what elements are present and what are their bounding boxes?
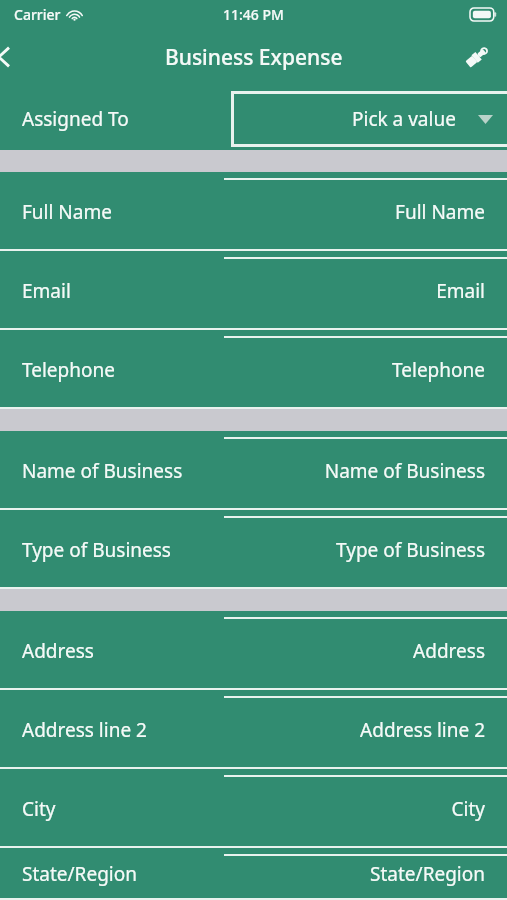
staticText: City [451, 796, 485, 822]
staticText: Carrier [14, 5, 61, 24]
staticText: State/Region [22, 861, 137, 887]
button[interactable]: Type of Business [0, 510, 507, 589]
button[interactable]: Pick a value [234, 94, 507, 144]
staticText: Business Expense [165, 43, 343, 72]
staticText: Address line 2 [360, 717, 485, 743]
button[interactable]: Full Name [0, 172, 507, 251]
staticText: State/Region [370, 861, 485, 887]
staticText: Pick a value [352, 106, 456, 132]
button[interactable]: Name of Business [0, 431, 507, 510]
staticText: Telephone [392, 357, 485, 383]
button[interactable]: City [0, 769, 507, 848]
button[interactable]: Telephone [0, 330, 507, 409]
button[interactable]: Email [0, 251, 507, 330]
staticText: Name of Business [324, 458, 485, 484]
staticText: Address line 2 [22, 717, 147, 743]
staticText: Address [413, 638, 485, 664]
button[interactable]: Back [0, 35, 26, 79]
button[interactable]: State/Region [0, 848, 507, 900]
staticText: Full Name [22, 199, 112, 225]
staticText: Email [22, 278, 71, 304]
button[interactable]: Address [0, 611, 507, 690]
staticText: Full Name [395, 199, 485, 225]
staticText: Name of Business [22, 458, 183, 484]
staticText: Assigned To [22, 106, 129, 132]
staticText: Address [22, 638, 94, 664]
button[interactable]: Address line 2 [0, 690, 507, 769]
staticText: 11:46 PM [223, 5, 284, 24]
button[interactable]: Theme [455, 35, 499, 79]
staticText: Email [436, 278, 485, 304]
staticText: Type of Business [336, 537, 485, 563]
staticText: City [22, 796, 56, 822]
staticText: Type of Business [22, 537, 171, 563]
staticText: Telephone [22, 357, 115, 383]
